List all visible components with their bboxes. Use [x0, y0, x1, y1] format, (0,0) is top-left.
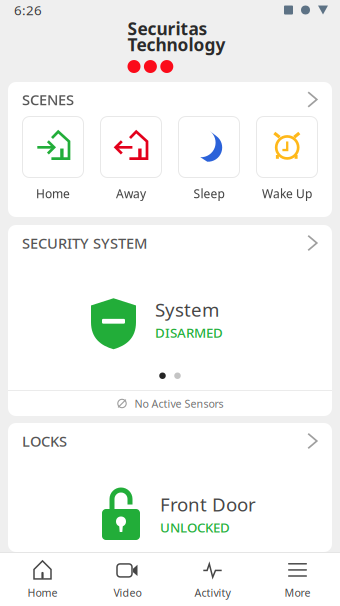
- button[interactable]: Home: [22, 116, 83, 201]
- staticText: DISARMED: [155, 324, 223, 341]
- staticText: UNLOCKED: [160, 518, 230, 536]
- button[interactable]: More: [255, 553, 340, 606]
- button[interactable]: Away: [100, 116, 161, 201]
- staticText: No Active Sensors: [134, 396, 223, 411]
- staticText: Away: [116, 185, 146, 201]
- staticText: Technology: [127, 33, 225, 56]
- button[interactable]: Wake Up: [256, 116, 317, 201]
- button[interactable]: SECURITY SYSTEM: [8, 225, 332, 261]
- staticText: Video: [113, 585, 141, 600]
- staticText: Wake Up: [262, 185, 312, 201]
- staticText: More: [284, 585, 310, 600]
- staticText: LOCKS: [22, 431, 67, 451]
- staticText: Home: [36, 185, 70, 201]
- button[interactable]: Sleep: [178, 116, 239, 201]
- staticText: Securitas: [127, 17, 207, 40]
- button[interactable]: Home: [0, 553, 85, 606]
- staticText: Home: [27, 585, 57, 600]
- button[interactable]: Video: [85, 553, 170, 606]
- button[interactable]: LOCKS: [8, 423, 332, 459]
- staticText: SECURITY SYSTEM: [22, 233, 147, 253]
- button[interactable]: SCENES: [8, 82, 332, 117]
- staticText: Activity: [194, 585, 230, 600]
- staticText: SCENES: [22, 90, 74, 109]
- staticText: Front Door: [160, 492, 256, 517]
- staticText: 6:26: [14, 1, 42, 19]
- staticText: System: [155, 297, 219, 322]
- button[interactable]: Activity: [170, 553, 255, 606]
- staticText: Sleep: [193, 185, 224, 201]
